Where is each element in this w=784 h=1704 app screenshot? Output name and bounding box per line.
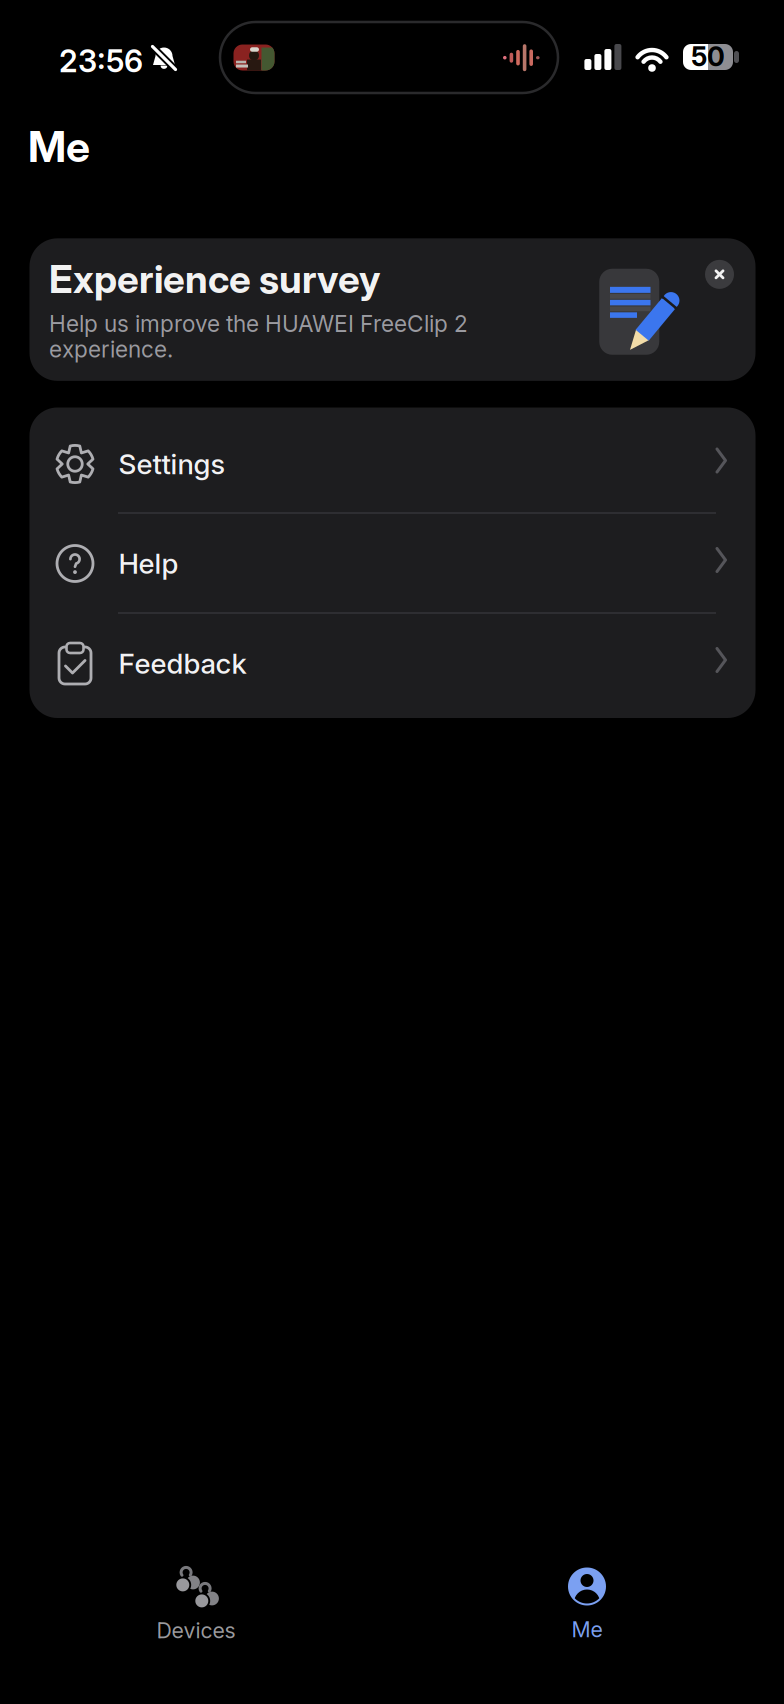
staticText: Help: [118, 547, 178, 580]
button[interactable]: Close: [705, 260, 734, 289]
staticText: experience.: [49, 336, 173, 363]
staticText: Feedback: [118, 647, 246, 680]
staticText: Devices: [156, 1618, 235, 1643]
staticText: 23:56: [59, 42, 143, 79]
staticText: Experience survey: [49, 255, 380, 302]
button[interactable]: Experience survey: [29, 238, 755, 381]
button[interactable]: Feedback: [29, 612, 755, 715]
button[interactable]: Me: [487, 1553, 687, 1653]
button[interactable]: Help: [29, 512, 755, 615]
staticText: Me: [571, 1617, 602, 1642]
staticText: Settings: [118, 447, 225, 481]
staticText: Help us improve the HUAWEI FreeClip 2: [49, 310, 468, 337]
staticText: Me: [28, 121, 90, 172]
staticText: 50: [691, 40, 725, 73]
button[interactable]: Settings: [29, 412, 755, 515]
button[interactable]: Devices: [96, 1553, 296, 1653]
